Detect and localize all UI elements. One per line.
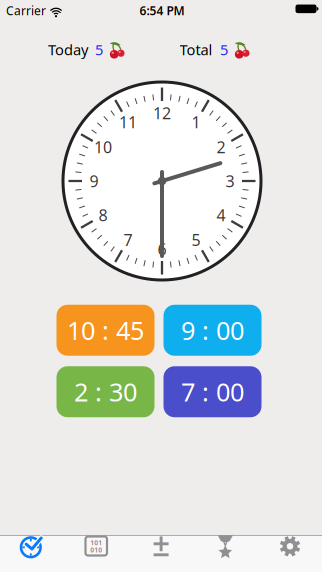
- staticText: 9 : 00: [181, 313, 244, 347]
- staticText: 4: [216, 204, 225, 226]
- staticText: 1: [191, 111, 200, 133]
- staticText: Total: [179, 40, 212, 59]
- staticText: 11: [119, 111, 137, 133]
- staticText: 2: [216, 136, 225, 158]
- staticText: 12: [153, 102, 171, 124]
- staticText: 6: [157, 238, 166, 260]
- staticText: 6:54 PM: [139, 2, 184, 18]
- staticText: 7 : 00: [181, 375, 244, 408]
- staticText: 5: [220, 40, 228, 59]
- staticText: 3: [225, 170, 234, 192]
- staticText: 7: [123, 229, 132, 250]
- staticText: 010: [90, 545, 102, 554]
- staticText: 2 : 30: [74, 375, 137, 408]
- staticText: 10 : 45: [67, 313, 144, 347]
- staticText: 8: [99, 204, 108, 226]
- staticText: Carrier: [6, 2, 46, 18]
- staticText: Today: [48, 40, 88, 59]
- staticText: 10: [94, 136, 112, 158]
- staticText: 9: [89, 170, 98, 192]
- staticText: 5: [191, 229, 200, 250]
- staticText: 5: [95, 40, 103, 59]
- staticText: 101: [90, 538, 102, 547]
